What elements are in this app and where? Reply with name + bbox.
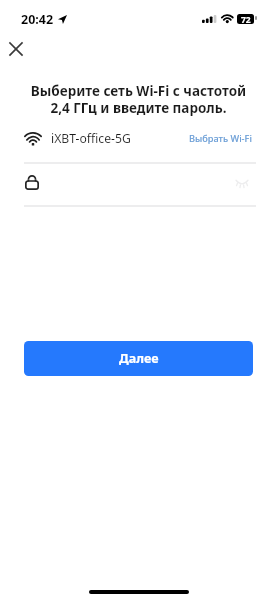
staticText: 72 — [241, 14, 251, 24]
staticText: Выберите сеть Wi-Fi с частотой 2,4 ГГц и… — [16, 82, 261, 117]
button[interactable]: Далее — [24, 341, 253, 376]
staticText: Далее — [119, 350, 159, 367]
button[interactable]: Show password — [0, 161, 277, 203]
staticText: iXBT-office-5G — [51, 130, 131, 147]
staticText: Выбрать Wi-Fi — [189, 132, 252, 145]
button[interactable]: iXBT-office-5G — [0, 120, 277, 156]
staticText: 20:42 — [21, 11, 54, 28]
button[interactable]: Close — [2, 35, 30, 63]
button[interactable]: Show password — [230, 170, 254, 194]
